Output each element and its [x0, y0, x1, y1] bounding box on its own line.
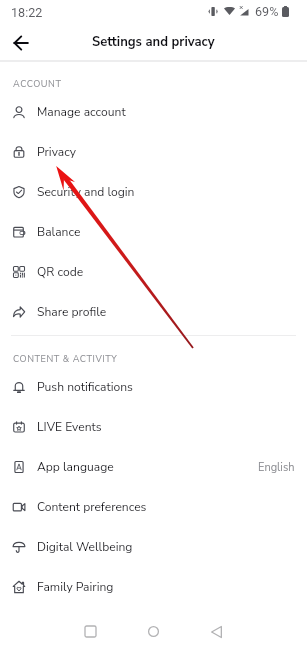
button[interactable]: Back	[3, 25, 38, 60]
staticText: Push notifications	[37, 379, 133, 396]
staticText: 69%	[255, 4, 279, 19]
staticText: Family Pairing	[37, 579, 114, 596]
staticText: Security and login	[37, 184, 135, 201]
button[interactable]: Family Pairing	[0, 567, 307, 607]
staticText: ACCOUNT	[13, 78, 62, 91]
staticText: QR code	[37, 264, 84, 281]
button[interactable]: Manage account	[0, 92, 307, 132]
button[interactable]: QR code	[0, 252, 307, 292]
staticText: LIVE Events	[37, 419, 102, 436]
staticText: Manage account	[37, 104, 126, 121]
button[interactable]: Home	[138, 616, 169, 647]
button[interactable]: Push notifications	[0, 367, 307, 407]
staticText: Privacy	[37, 144, 77, 161]
staticText: App language	[37, 459, 114, 476]
button[interactable]: Content preferences	[0, 487, 307, 527]
staticText: English	[258, 460, 295, 475]
button[interactable]: Digital Wellbeing	[0, 527, 307, 567]
button[interactable]: Back	[201, 616, 232, 647]
staticText: 18:22	[11, 5, 43, 20]
staticText: Content preferences	[37, 499, 147, 516]
button[interactable]: Privacy	[0, 132, 307, 172]
button[interactable]: App language	[0, 447, 307, 487]
button[interactable]: Security and login	[0, 172, 307, 212]
button[interactable]: LIVE Events	[0, 407, 307, 447]
button[interactable]: Share profile	[0, 292, 307, 332]
staticText: Settings and privacy	[92, 33, 215, 51]
staticText: CONTENT & ACTIVITY	[13, 353, 118, 366]
button[interactable]: Balance	[0, 212, 307, 252]
button[interactable]: Recents	[75, 616, 106, 647]
staticText: Digital Wellbeing	[37, 539, 133, 556]
staticText: Share profile	[37, 304, 107, 321]
staticText: Balance	[37, 224, 81, 241]
